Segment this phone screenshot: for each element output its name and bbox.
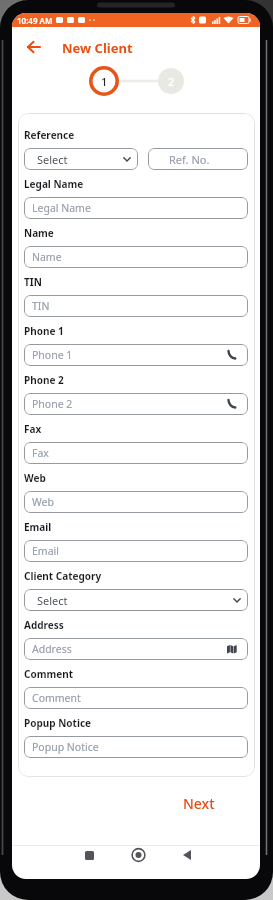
button[interactable]: Address <box>24 638 248 660</box>
button[interactable]: Web <box>24 491 248 513</box>
staticText: TIN <box>24 275 42 289</box>
staticText: Phone 2 <box>24 373 64 387</box>
button[interactable]: Email <box>24 540 248 562</box>
staticText: Reference <box>24 128 75 142</box>
staticText: Popup Notice <box>32 740 99 754</box>
staticText: Email <box>24 520 52 534</box>
button[interactable]: Comment <box>24 687 248 709</box>
button[interactable]: Phone 1 <box>24 344 248 366</box>
button[interactable]: Fax <box>24 442 248 464</box>
button[interactable]: Phone 2 <box>24 393 248 415</box>
button[interactable]: Select <box>24 148 138 170</box>
staticText: Web <box>24 471 46 485</box>
button[interactable] <box>27 41 41 53</box>
staticText: Comment <box>32 691 81 705</box>
staticText: Name <box>32 250 62 264</box>
staticText: Phone 2 <box>32 397 73 411</box>
button[interactable]: Ref. No. <box>148 148 248 170</box>
staticText: Name <box>24 226 54 240</box>
staticText: Legal Name <box>24 177 84 191</box>
button[interactable]: TIN <box>24 295 248 317</box>
staticText: Fax <box>24 422 42 436</box>
button[interactable]: Next <box>173 792 225 814</box>
staticText: Ref. No. <box>169 152 210 167</box>
button[interactable]: Name <box>24 246 248 268</box>
staticText: Comment <box>24 667 73 681</box>
staticText: Client Category <box>24 569 102 583</box>
staticText: Phone 1 <box>32 348 73 362</box>
staticText: Popup Notice <box>24 716 92 730</box>
button[interactable]: Select <box>24 589 248 611</box>
staticText: Next <box>183 794 215 813</box>
staticText: Phone 1 <box>24 324 64 338</box>
staticText: Fax <box>32 446 49 460</box>
staticText: Address <box>32 642 72 656</box>
staticText: 1 <box>101 74 108 89</box>
staticText: New Client <box>62 39 133 57</box>
button[interactable]: Legal Name <box>24 197 248 219</box>
staticText: Legal Name <box>32 201 91 215</box>
button[interactable]: Popup Notice <box>24 736 248 758</box>
staticText: 2 <box>168 74 175 89</box>
staticText: Select <box>37 593 68 608</box>
staticText: 10:49 AM <box>17 15 53 26</box>
staticText: Select <box>37 152 68 167</box>
staticText: Web <box>32 495 54 509</box>
staticText: TIN <box>32 299 50 313</box>
staticText: Address <box>24 618 64 632</box>
staticText: Email <box>32 544 59 558</box>
